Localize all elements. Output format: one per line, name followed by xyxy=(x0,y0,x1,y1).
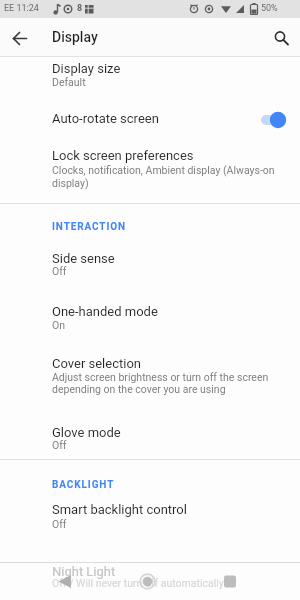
staticText: 8 xyxy=(77,3,83,14)
button[interactable]: One-handed mode xyxy=(0,290,300,343)
button[interactable]: Smart backlight control xyxy=(0,494,300,544)
button[interactable]: Display size xyxy=(0,57,300,100)
button[interactable]: Lock screen preferences xyxy=(0,140,300,203)
staticText: Off xyxy=(52,518,67,530)
button[interactable]: Glove mode xyxy=(0,409,300,459)
staticText: BACKLIGHT xyxy=(52,479,115,491)
staticText: Off xyxy=(52,265,67,277)
staticText: Glove mode xyxy=(52,425,121,440)
staticText: Display xyxy=(52,29,98,45)
button[interactable] xyxy=(133,567,162,596)
staticText: Side sense xyxy=(52,251,115,266)
staticText: EE 11:24 xyxy=(4,3,39,14)
staticText: Night Light xyxy=(52,564,116,579)
staticText: depending on the cover you are using xyxy=(52,383,226,395)
staticText: Off xyxy=(52,439,67,451)
staticText: Smart backlight control xyxy=(52,502,187,517)
staticText: 50% xyxy=(261,3,278,14)
staticText: Auto-rotate screen xyxy=(52,111,159,126)
button[interactable] xyxy=(216,568,244,596)
staticText: On xyxy=(52,319,66,331)
staticText: Adjust screen brightness or turn off the… xyxy=(52,371,269,383)
button[interactable]: Side sense xyxy=(0,238,300,290)
button[interactable] xyxy=(50,568,78,596)
staticText: display) xyxy=(52,177,89,189)
button[interactable]: Night Light xyxy=(0,562,300,600)
button[interactable]: Cover selection xyxy=(0,343,300,409)
staticText: Off / Will never turn off automatically xyxy=(52,577,224,589)
button[interactable] xyxy=(268,25,296,53)
button[interactable] xyxy=(6,25,34,53)
staticText: Lock screen preferences xyxy=(52,148,194,163)
staticText: Display size xyxy=(52,61,121,76)
staticText: Cover selection xyxy=(52,356,141,371)
button[interactable]: Auto-rotate screen xyxy=(0,100,300,140)
staticText: INTERACTION xyxy=(52,221,127,233)
staticText: Default xyxy=(52,76,86,88)
staticText: One-handed mode xyxy=(52,304,158,319)
staticText: Clocks, notification, Ambient display (A… xyxy=(52,164,275,176)
